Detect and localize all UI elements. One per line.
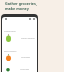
staticText: Avocado (20, 68, 30, 71)
staticText: Oranges (21, 56, 31, 59)
staticText: Gather groceries, (5, 1, 37, 6)
staticText: make money (5, 6, 29, 11)
button[interactable]: Avocado (2, 67, 37, 72)
staticText: Fresh apples (21, 37, 35, 40)
staticText: Best sellers (4, 50, 17, 53)
staticText: Categories (4, 30, 16, 33)
button[interactable]: Fresh apples (2, 34, 37, 42)
button[interactable]: Oranges (2, 54, 37, 61)
